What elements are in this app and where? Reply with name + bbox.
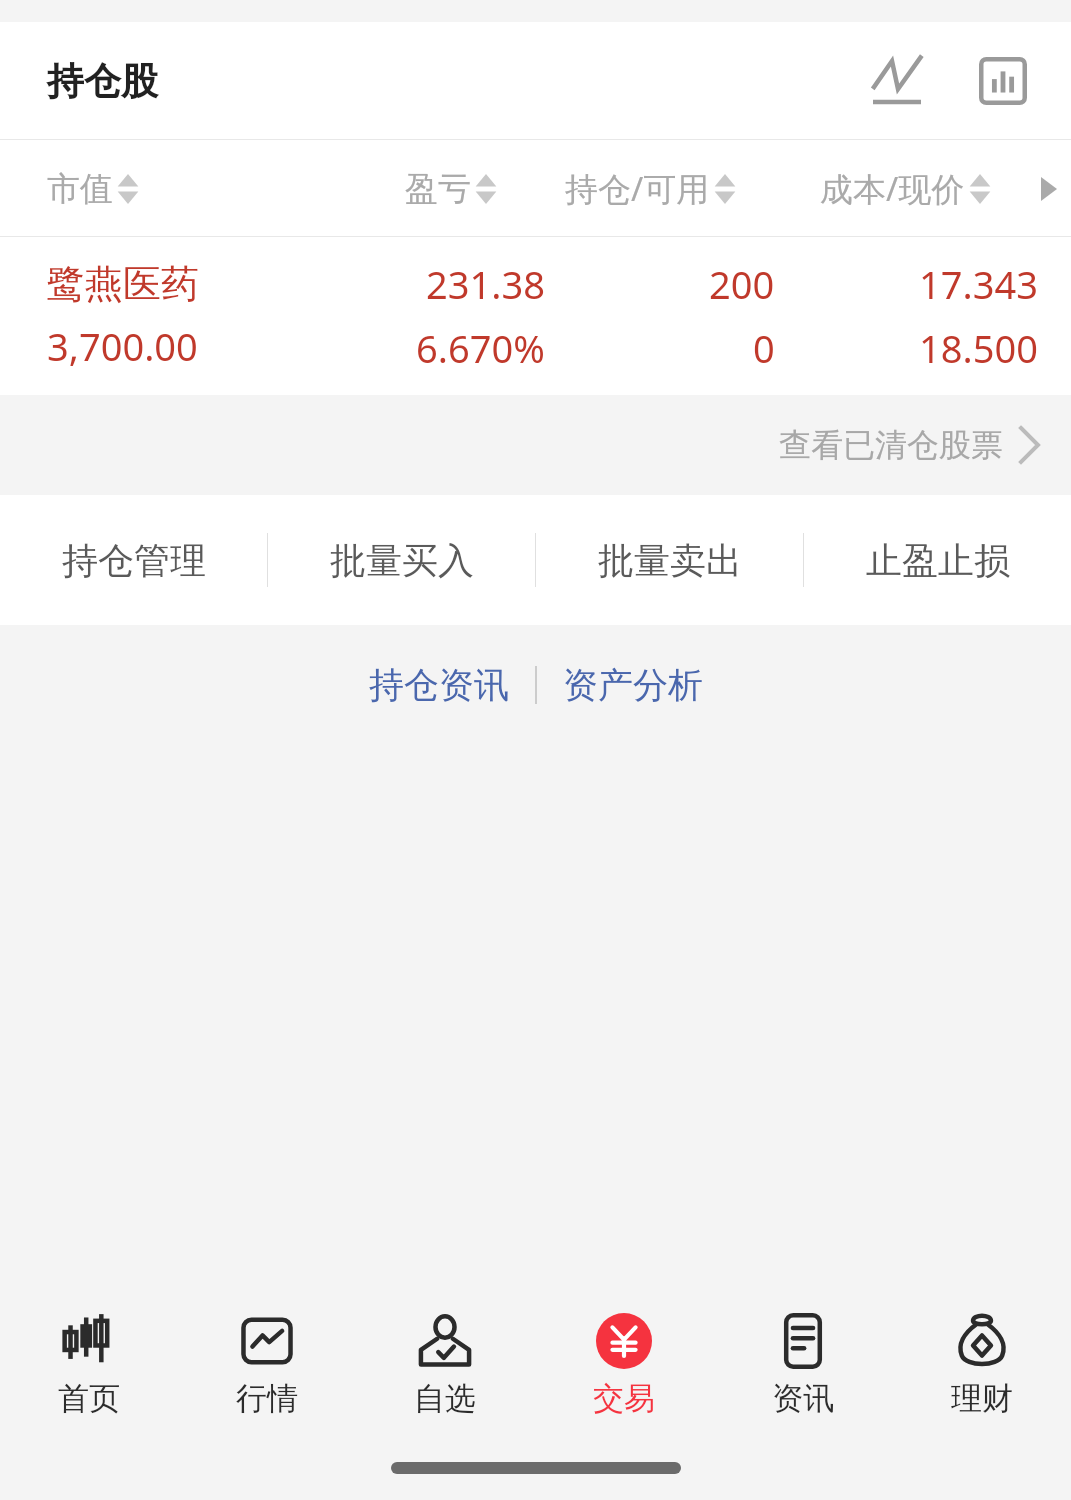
button[interactable]: 持仓管理	[0, 495, 267, 625]
staticText: 6.670%	[416, 322, 545, 374]
staticText: 批量买入	[330, 538, 474, 583]
staticText: 17.343	[919, 258, 1038, 310]
button[interactable]: 批量卖出	[536, 495, 803, 625]
button[interactable]: 市值	[47, 168, 139, 210]
button[interactable]: Bar chart	[965, 43, 1041, 119]
button[interactable]: 成本/现价	[820, 166, 991, 211]
staticText: 成本/现价	[820, 166, 965, 211]
button[interactable]: 批量买入	[268, 495, 535, 625]
button[interactable]: 自选	[356, 1290, 534, 1440]
button[interactable]: 理财	[892, 1290, 1071, 1440]
button[interactable]: 资产分析	[537, 651, 729, 719]
staticText: 交易	[593, 1379, 655, 1418]
staticText: 查看已清仓股票	[779, 425, 1003, 465]
staticText: 鹭燕医药	[47, 260, 199, 308]
button[interactable]: 首页	[0, 1290, 178, 1440]
staticText: 0	[753, 322, 775, 374]
button[interactable]: 查看已清仓股票	[0, 395, 1071, 495]
staticText: 自选	[414, 1379, 476, 1418]
button[interactable]: Line chart	[859, 43, 935, 119]
button[interactable]: 盈亏	[405, 168, 497, 210]
staticText: 理财	[951, 1379, 1013, 1418]
button[interactable]: 交易	[534, 1290, 713, 1440]
button[interactable]: 鹭燕医药	[0, 237, 1071, 395]
button[interactable]: 行情	[178, 1290, 356, 1440]
staticText: 持仓资讯	[369, 663, 509, 707]
staticText: 批量卖出	[598, 538, 742, 583]
staticText: 资产分析	[563, 663, 703, 707]
staticText: 持仓/可用	[565, 166, 710, 211]
staticText: 231.38	[426, 258, 545, 310]
staticText: 3,700.00	[47, 320, 198, 372]
staticText: 200	[709, 258, 775, 310]
staticText: 首页	[58, 1379, 120, 1418]
button[interactable]: 持仓/可用	[565, 166, 736, 211]
button[interactable]: 资讯	[713, 1290, 892, 1440]
button[interactable]: 持仓资讯	[343, 651, 535, 719]
staticText: 18.500	[919, 322, 1038, 374]
staticText: 资讯	[772, 1379, 834, 1418]
staticText: 持仓管理	[62, 538, 206, 583]
staticText: 市值	[47, 168, 113, 210]
staticText: 盈亏	[405, 168, 471, 210]
staticText: 止盈止损	[866, 538, 1010, 583]
staticText: 持仓股	[47, 58, 158, 105]
staticText: 行情	[236, 1379, 298, 1418]
button[interactable]: 止盈止损	[804, 495, 1071, 625]
